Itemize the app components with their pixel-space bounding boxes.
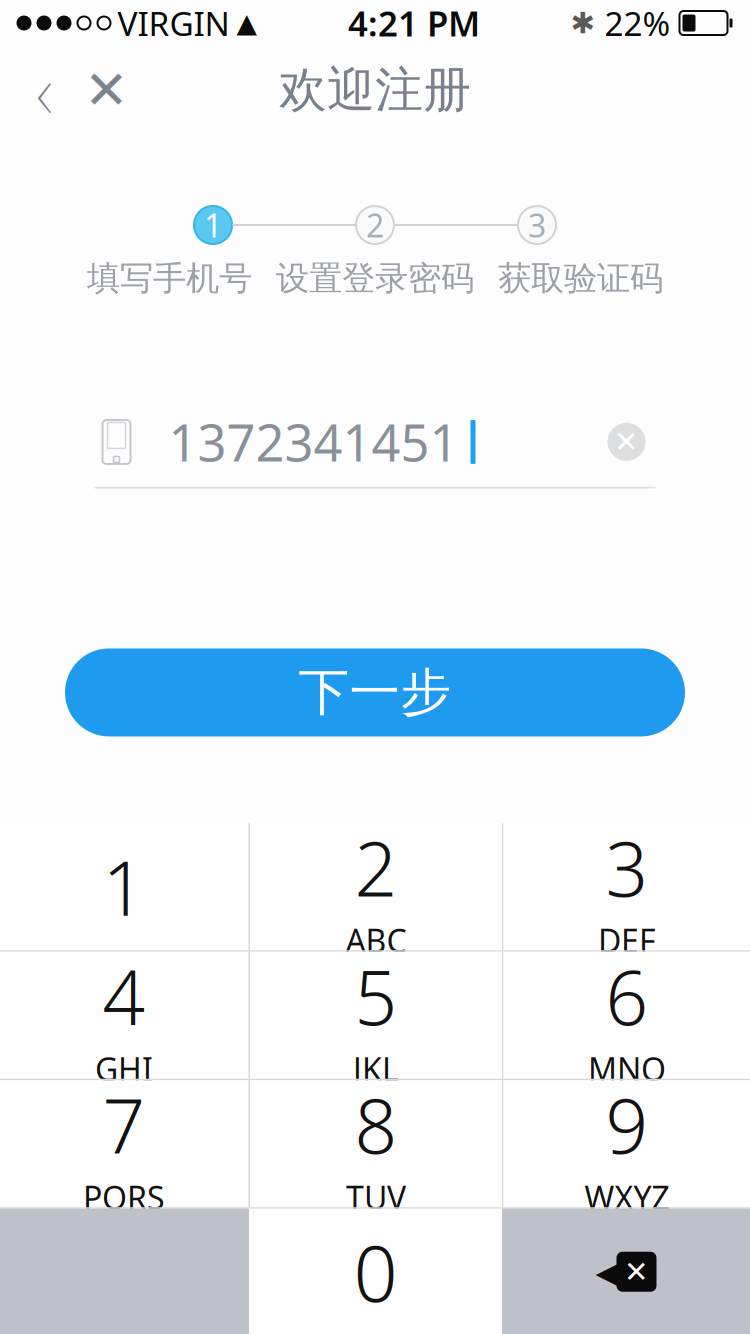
button[interactable]: 7 — [0, 1080, 248, 1207]
button[interactable]: 0 — [249, 1209, 502, 1334]
staticText: 设置登录密码 — [276, 258, 474, 299]
staticText: 22% — [604, 1, 670, 45]
staticText: 1 — [204, 204, 222, 246]
button[interactable]: Back — [13, 55, 75, 125]
button[interactable]: Close — [75, 55, 137, 125]
button[interactable]: 8 — [250, 1080, 502, 1207]
staticText: PQRS — [83, 1176, 165, 1219]
staticText: 2 — [366, 204, 384, 246]
staticText: 0 — [353, 1220, 397, 1323]
staticText: 1 — [102, 837, 145, 936]
staticText: ◀ — [595, 1249, 626, 1294]
button[interactable]: Delete — [502, 1209, 750, 1334]
staticText: 获取验证码 — [498, 258, 663, 299]
staticText: 3 — [528, 204, 546, 246]
staticText: ▲ — [236, 8, 257, 38]
staticText: 填写手机号 — [87, 258, 252, 299]
staticText: JKL — [353, 1048, 399, 1090]
staticText: 3 — [605, 818, 648, 917]
staticText: DEF — [598, 919, 656, 962]
staticText: GHI — [95, 1048, 153, 1090]
staticText: 欢迎注册 — [279, 60, 471, 119]
staticText: ✱ — [570, 6, 595, 40]
button[interactable]: Clear text — [597, 413, 655, 471]
button[interactable]: 5 — [250, 952, 502, 1079]
staticText: 6 — [605, 946, 648, 1046]
button[interactable]: 6 — [503, 952, 750, 1079]
staticText: 4:21 PM — [348, 0, 480, 46]
staticText: 8 — [354, 1075, 397, 1174]
staticText: 4 — [102, 946, 145, 1046]
staticText: 7 — [102, 1075, 145, 1174]
button[interactable]: 3 — [503, 823, 750, 950]
staticText: VIRGIN — [117, 1, 229, 45]
staticText: 2 — [354, 818, 397, 917]
staticText: 5 — [354, 946, 397, 1046]
staticText: 9 — [605, 1075, 648, 1174]
staticText: ✕ — [624, 1255, 649, 1288]
button[interactable]: 4 — [0, 952, 248, 1079]
button[interactable]: 下一步 — [65, 648, 685, 736]
staticText: ‹ — [36, 39, 53, 141]
staticText: ✕ — [614, 425, 639, 459]
button[interactable]: 9 — [503, 1080, 750, 1207]
staticText: ABC — [345, 919, 406, 962]
staticText: MNO — [588, 1048, 666, 1090]
staticText: ✕ — [84, 60, 129, 120]
staticText: 1372341451 — [168, 408, 458, 476]
staticText: TUV — [346, 1176, 406, 1219]
button[interactable]: 1 — [0, 823, 248, 950]
staticText: 下一步 — [298, 661, 451, 723]
staticText: WXYZ — [584, 1176, 669, 1219]
button[interactable]: 2 — [250, 823, 502, 950]
